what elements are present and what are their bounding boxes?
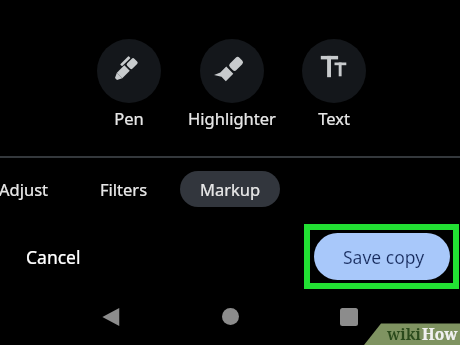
staticText: Adjust	[0, 178, 49, 200]
button[interactable]: Markup	[180, 171, 280, 207]
button[interactable]: Text	[290, 39, 378, 129]
staticText: Pen	[85, 107, 173, 129]
button[interactable]: Home	[216, 302, 245, 331]
button[interactable]: Filters	[74, 171, 174, 207]
button[interactable]: Cancel	[14, 237, 92, 277]
staticText: wiki	[387, 323, 422, 344]
button[interactable]: Pen	[85, 39, 173, 129]
button[interactable]: Back	[96, 302, 125, 331]
staticText: Highlighter	[188, 107, 276, 129]
staticText: How	[422, 323, 458, 344]
button[interactable]: Adjust	[0, 171, 74, 207]
button[interactable]: Save copy	[314, 233, 450, 280]
button[interactable]: Recent apps	[334, 302, 363, 331]
staticText: Markup	[200, 178, 261, 200]
button[interactable]: Highlighter	[188, 39, 276, 129]
staticText: Save copy	[343, 245, 425, 269]
staticText: Text	[290, 107, 378, 129]
staticText: Filters	[100, 178, 148, 200]
staticText: Cancel	[26, 245, 81, 269]
